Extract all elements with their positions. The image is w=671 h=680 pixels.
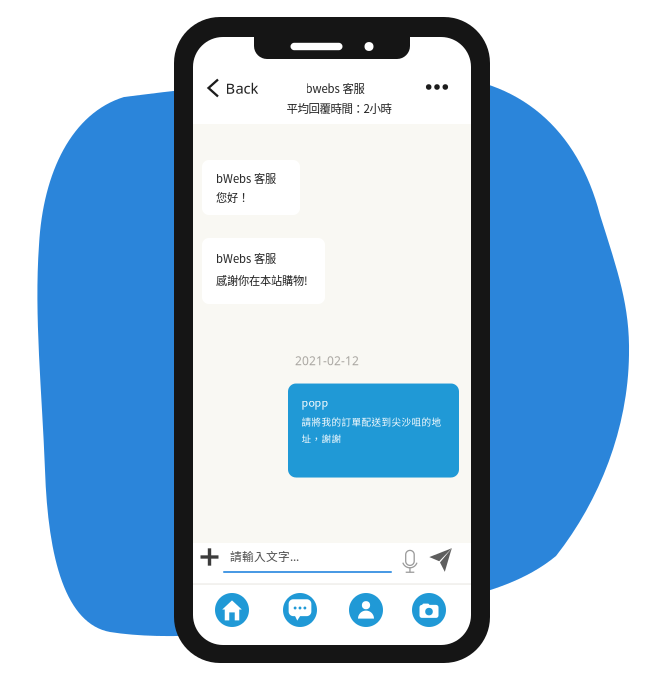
staticText: 平均回覆時間：2小時 <box>286 100 391 116</box>
staticText: 址，謝謝 <box>301 431 341 445</box>
staticText: 您好！ <box>216 189 249 205</box>
button[interactable]: Add attachment <box>194 542 224 572</box>
button[interactable]: Voice message <box>398 544 422 575</box>
button[interactable]: More options <box>418 76 456 98</box>
staticText: 感謝你在本站購物! <box>216 272 308 288</box>
button[interactable]: Send <box>425 544 456 576</box>
staticText: Back <box>225 78 258 98</box>
button[interactable]: Messages <box>283 593 317 627</box>
staticText: bWebs 客服 <box>216 250 276 266</box>
staticText: 請輸入文字... <box>230 547 299 564</box>
staticText: popp <box>301 394 328 410</box>
staticText: 2021-02-12 <box>295 352 359 368</box>
staticText: bWebs 客服 <box>216 170 276 186</box>
staticText: bwebs 客服 <box>305 80 364 96</box>
button[interactable]: Home <box>215 593 249 627</box>
button[interactable]: Back <box>202 72 263 104</box>
button[interactable]: Camera <box>412 593 446 627</box>
button[interactable]: Profile <box>349 593 383 627</box>
staticText: 請將我的訂單配送到尖沙咀的地 <box>301 414 441 428</box>
